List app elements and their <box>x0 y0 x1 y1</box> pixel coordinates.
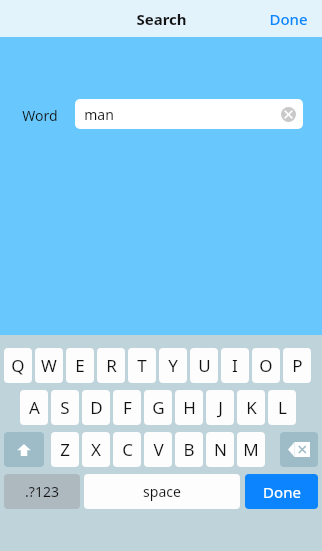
button[interactable]: Done <box>255 1 322 37</box>
button[interactable]: J <box>206 390 234 425</box>
staticText: O <box>259 354 273 377</box>
staticText: S <box>60 396 70 419</box>
staticText: M <box>243 438 259 461</box>
staticText: Search <box>136 9 187 29</box>
button[interactable]: Shift <box>4 432 44 467</box>
button[interactable]: D <box>82 390 110 425</box>
staticText: Done <box>269 9 308 29</box>
staticText: I <box>232 354 238 377</box>
button[interactable]: M <box>237 432 265 467</box>
button[interactable]: Y <box>159 348 187 383</box>
button[interactable]: C <box>113 432 141 467</box>
button[interactable]: W <box>35 348 63 383</box>
staticText: Y <box>168 354 178 377</box>
button[interactable]: Backspace <box>280 432 318 467</box>
button[interactable]: H <box>175 390 203 425</box>
staticText: Word <box>22 106 58 125</box>
button[interactable]: E <box>66 348 94 383</box>
button[interactable]: A <box>20 390 48 425</box>
staticText: V <box>153 438 164 461</box>
button[interactable]: Clear text <box>281 107 296 122</box>
staticText: R <box>106 354 117 377</box>
button[interactable]: B <box>175 432 203 467</box>
button[interactable]: P <box>283 348 311 383</box>
staticText: X <box>91 438 101 461</box>
button[interactable]: F <box>113 390 141 425</box>
staticText: Z <box>60 438 70 461</box>
button[interactable]: U <box>190 348 218 383</box>
staticText: B <box>183 438 195 461</box>
button[interactable]: S <box>51 390 79 425</box>
staticText: L <box>278 396 287 419</box>
staticText: E <box>75 354 85 377</box>
staticText: space <box>143 482 181 501</box>
button[interactable]: .?123 <box>4 474 80 509</box>
button[interactable]: I <box>221 348 249 383</box>
staticText: .?123 <box>25 482 59 501</box>
button[interactable]: K <box>237 390 265 425</box>
button[interactable]: L <box>268 390 296 425</box>
button[interactable]: V <box>144 432 172 467</box>
button[interactable]: Q <box>4 348 32 383</box>
button[interactable]: man <box>75 99 303 129</box>
staticText: A <box>29 396 40 419</box>
button[interactable]: X <box>82 432 110 467</box>
staticText: Done <box>263 482 301 502</box>
button[interactable]: T <box>128 348 156 383</box>
button[interactable]: R <box>97 348 125 383</box>
staticText: P <box>292 354 303 377</box>
staticText: H <box>183 396 196 419</box>
staticText: C <box>122 438 133 461</box>
button[interactable]: N <box>206 432 234 467</box>
staticText: U <box>198 354 211 377</box>
staticText: K <box>246 396 257 419</box>
staticText: D <box>90 396 103 419</box>
staticText: N <box>214 438 227 461</box>
staticText: J <box>218 396 223 419</box>
staticText: G <box>152 396 165 419</box>
button[interactable]: space <box>84 474 240 509</box>
button[interactable]: Done <box>245 474 318 509</box>
button[interactable]: O <box>252 348 280 383</box>
staticText: W <box>41 354 57 377</box>
staticText: T <box>137 354 147 377</box>
staticText: F <box>123 396 132 419</box>
button[interactable]: G <box>144 390 172 425</box>
staticText: Q <box>11 354 25 377</box>
staticText: man <box>84 105 114 124</box>
button[interactable]: Z <box>51 432 79 467</box>
